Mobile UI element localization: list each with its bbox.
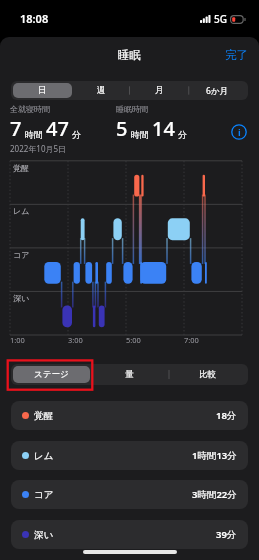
staticText: 18分 (216, 409, 237, 422)
staticText: i (238, 126, 241, 138)
staticText: 時間 (25, 129, 43, 140)
staticText: 覚醒 (34, 410, 53, 422)
staticText: 分 (72, 129, 81, 140)
staticText: コア (13, 250, 30, 260)
staticText: レム (34, 450, 54, 462)
button[interactable]: 覚醒 (11, 401, 248, 430)
staticText: 47 (46, 115, 69, 142)
staticText: 覚醒 (13, 163, 29, 173)
staticText: 2022年10月5日 (10, 143, 67, 154)
staticText: 5 (116, 115, 128, 142)
staticText: コア (34, 489, 54, 501)
button[interactable]: 週 (72, 83, 130, 98)
staticText: 量 (125, 369, 134, 380)
staticText: 14 (152, 115, 175, 142)
button[interactable]: 完了 (214, 42, 259, 68)
button[interactable]: 月 (130, 83, 188, 98)
staticText: 6か月 (206, 85, 229, 97)
button[interactable]: ステージ (13, 366, 90, 383)
button[interactable]: 詳細情報 (229, 122, 249, 142)
staticText: 完了 (225, 48, 248, 62)
staticText: 5:00 (126, 335, 141, 345)
staticText: 全就寝時間 (10, 104, 50, 114)
staticText: 39分 (216, 528, 237, 541)
staticText: レム (13, 206, 30, 216)
staticText: 深い (13, 293, 30, 303)
button[interactable]: 日 (13, 83, 72, 98)
staticText: 週 (97, 85, 106, 96)
staticText: 5G (214, 12, 227, 26)
button[interactable]: 量 (90, 366, 168, 383)
button[interactable]: レム (11, 441, 248, 470)
staticText: 睡眠時間 (116, 104, 148, 114)
staticText: 深い (34, 529, 54, 541)
button[interactable]: 深い (11, 520, 248, 549)
staticText: 1:00 (10, 335, 25, 345)
button[interactable]: 6か月 (188, 83, 246, 98)
staticText: ステージ (34, 369, 69, 380)
staticText: 18:08 (20, 11, 49, 26)
staticText: 日 (38, 85, 47, 96)
staticText: 7:00 (184, 335, 199, 345)
staticText: 月 (155, 85, 164, 96)
staticText: 3:00 (68, 335, 83, 345)
button[interactable]: 比較 (168, 366, 246, 383)
staticText: 時間 (131, 129, 149, 140)
staticText: 7 (10, 115, 22, 142)
staticText: 比較 (199, 369, 216, 380)
staticText: 1時間13分 (192, 449, 237, 462)
staticText: 分 (178, 129, 187, 140)
button[interactable]: コア (11, 480, 248, 509)
staticText: 睡眠 (118, 48, 141, 62)
staticText: 3時間22分 (192, 488, 237, 501)
